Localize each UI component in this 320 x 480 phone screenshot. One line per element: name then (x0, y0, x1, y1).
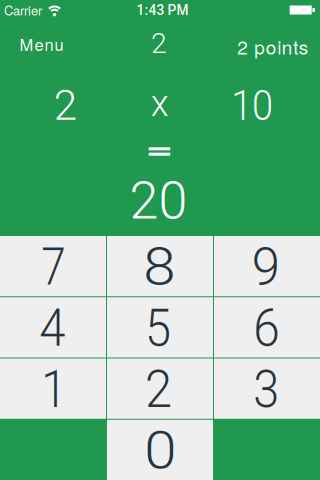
button[interactable]: 7 (0, 236, 106, 296)
staticText: 4 (38, 298, 67, 358)
staticText: 9 (251, 236, 280, 297)
staticText: x (151, 82, 169, 125)
staticText: 7 (39, 236, 68, 297)
staticText: 20 (129, 170, 187, 231)
button[interactable]: 6 (214, 297, 320, 357)
staticText: 3 (252, 359, 281, 420)
staticText: Carrier (4, 1, 42, 19)
button[interactable]: 2 (107, 358, 213, 419)
button[interactable]: 8 (107, 236, 213, 296)
staticText: 2 (54, 81, 77, 130)
button[interactable]: 4 (0, 297, 106, 357)
staticText: 5 (143, 298, 172, 358)
staticText: 2 (144, 359, 173, 420)
staticText: 2 points (237, 33, 308, 60)
staticText: 10 (229, 81, 275, 130)
staticText: 0 (146, 420, 175, 480)
staticText: 1 (39, 359, 68, 420)
button[interactable]: 3 (214, 358, 320, 419)
staticText: M e n u (19, 32, 63, 56)
staticText: 6 (252, 298, 281, 358)
staticText: 8 (145, 236, 174, 297)
staticText: 2 (151, 27, 167, 60)
button[interactable]: 0 (107, 420, 213, 480)
button[interactable]: 1 (0, 358, 106, 419)
button[interactable]: 5 (107, 297, 213, 357)
button[interactable]: Menu (19, 32, 63, 56)
button[interactable]: 9 (214, 236, 320, 296)
staticText: 1:43 PM (136, 2, 188, 18)
